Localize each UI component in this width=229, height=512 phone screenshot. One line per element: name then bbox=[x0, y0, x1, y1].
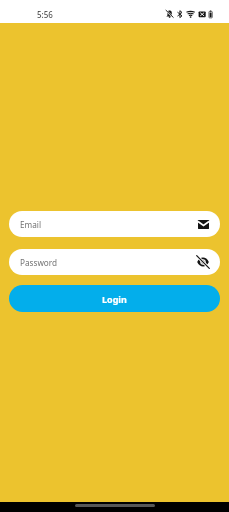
staticText: Login bbox=[102, 293, 127, 305]
button[interactable]: Password bbox=[9, 249, 220, 275]
staticText: 5:56 bbox=[37, 9, 53, 20]
other: Email bbox=[196, 217, 210, 231]
button[interactable]: Show password bbox=[196, 255, 210, 269]
button[interactable]: Login bbox=[9, 285, 220, 312]
staticText: Email bbox=[20, 219, 42, 230]
button[interactable]: Email bbox=[9, 211, 220, 237]
staticText: Password bbox=[20, 257, 58, 268]
